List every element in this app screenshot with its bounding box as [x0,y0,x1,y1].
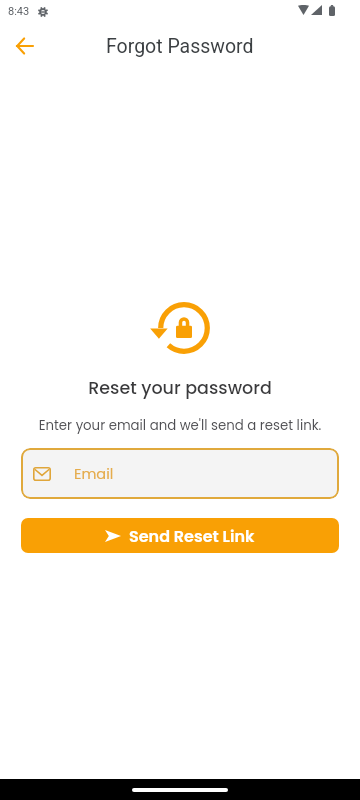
staticText: 8:43 [8,5,30,18]
staticText: Send Reset Link [129,525,255,547]
button[interactable]: Back [6,27,43,64]
staticText: Reset your password [0,376,360,401]
button[interactable]: Send Reset Link [21,518,339,553]
staticText: Enter your email and we'll send a reset … [0,416,360,435]
button[interactable]: Email [21,448,339,499]
staticText: Forgot Password [106,35,254,58]
staticText: Email [74,464,114,484]
